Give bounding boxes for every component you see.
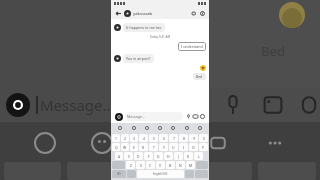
button[interactable]: You in airport?: [126, 56, 151, 61]
staticText: X: [140, 163, 142, 168]
staticText: S: [128, 154, 130, 159]
staticText: Z: [130, 163, 132, 168]
button[interactable]: X: [136, 161, 145, 169]
button[interactable]: K: [184, 152, 193, 160]
button[interactable]: Stickers: [199, 113, 206, 120]
button[interactable]: !#1: [112, 170, 126, 178]
button[interactable]: Back: [114, 9, 122, 17]
staticText: R: [142, 145, 145, 150]
staticText: .: [189, 172, 190, 177]
button[interactable]: Q: [112, 143, 120, 151]
button[interactable]: I understand: [181, 44, 203, 49]
button[interactable]: 3: [130, 134, 138, 142]
button[interactable]: J: [174, 152, 183, 160]
staticText: Today 9:41 AM: [114, 35, 206, 39]
button[interactable]: Details: [198, 9, 206, 17]
button[interactable]: Gallery: [192, 113, 199, 120]
button[interactable]: Settings: [169, 124, 177, 132]
button[interactable]: R: [139, 143, 148, 151]
button[interactable]: G: [154, 152, 163, 160]
staticText: It happens to me too: [126, 25, 162, 30]
button[interactable]: 5: [149, 134, 158, 142]
button[interactable]: English (US): [137, 170, 184, 178]
button[interactable]: S: [124, 152, 133, 160]
button[interactable]: 6: [159, 134, 168, 142]
button[interactable]: O: [189, 143, 198, 151]
button[interactable]: D: [134, 152, 143, 160]
button[interactable]: B: [166, 161, 175, 169]
button[interactable]: T: [149, 143, 158, 151]
button[interactable]: W: [121, 143, 129, 151]
staticText: B: [169, 163, 172, 168]
staticText: 7: [173, 136, 175, 141]
button[interactable]: yakousab: [124, 10, 190, 17]
staticText: V: [159, 163, 162, 168]
button[interactable]: 4: [139, 134, 148, 142]
staticText: A: [118, 154, 121, 159]
button[interactable]: V: [156, 161, 165, 169]
button[interactable]: 2: [121, 134, 129, 142]
button[interactable]: I: [179, 143, 188, 151]
staticText: Message...: [40, 95, 115, 115]
staticText: D: [137, 154, 140, 159]
staticText: U: [172, 145, 175, 150]
button[interactable]: 7: [169, 134, 178, 142]
staticText: N: [179, 163, 182, 168]
button[interactable]: Video call: [190, 9, 198, 17]
button[interactable]: 0: [199, 134, 208, 142]
button[interactable]: Emoji: [130, 124, 138, 132]
button[interactable]: N: [176, 161, 185, 169]
button[interactable]: 9: [189, 134, 198, 142]
button[interactable]: 1: [112, 134, 120, 142]
button[interactable]: C: [146, 161, 155, 169]
button[interactable]: H: [164, 152, 173, 160]
button[interactable]: Message...: [127, 112, 181, 121]
staticText: 4: [143, 136, 145, 141]
staticText: 3: [133, 136, 135, 141]
staticText: !#1: [117, 172, 121, 176]
button[interactable]: A: [115, 152, 123, 160]
staticText: W: [123, 145, 127, 150]
staticText: 2: [124, 136, 126, 141]
button[interactable]: 8: [179, 134, 188, 142]
button[interactable]: ,: [127, 170, 136, 178]
staticText: F: [148, 154, 150, 159]
button[interactable]: Bed: [196, 74, 203, 79]
button[interactable]: Y: [159, 143, 168, 151]
staticText: I: [183, 145, 185, 150]
button[interactable]: E: [130, 143, 138, 151]
button[interactable]: U: [169, 143, 178, 151]
button[interactable]: GIF: [143, 124, 151, 132]
staticText: 5: [153, 136, 155, 141]
button[interactable]: Search: [116, 124, 124, 132]
button[interactable]: P: [199, 143, 208, 151]
staticText: I understand: [181, 44, 203, 49]
staticText: E: [133, 145, 135, 150]
staticText: 6: [163, 136, 165, 141]
button[interactable]: M: [186, 161, 195, 169]
staticText: 8: [183, 136, 185, 141]
button[interactable]: F: [144, 152, 153, 160]
staticText: Y: [163, 145, 165, 150]
staticText: You in airport?: [126, 56, 151, 61]
button[interactable]: Translate: [183, 124, 191, 132]
staticText: 0: [203, 136, 205, 141]
button[interactable]: More: [196, 124, 204, 132]
button[interactable]: L: [194, 152, 203, 160]
staticText: 9: [193, 136, 195, 141]
staticText: O: [192, 145, 195, 150]
staticText: 1: [115, 136, 117, 141]
button[interactable]: Camera: [114, 112, 123, 121]
button[interactable]: It happens to me too: [126, 25, 162, 30]
button[interactable]: Clipboard: [156, 124, 164, 132]
staticText: K: [187, 154, 190, 159]
button[interactable]: Z: [126, 161, 135, 169]
staticText: Bed: [196, 74, 203, 79]
button[interactable]: Voice message: [185, 113, 192, 120]
button[interactable]: .: [185, 170, 194, 178]
staticText: yakousab: [133, 11, 153, 17]
staticText: M: [189, 163, 193, 168]
